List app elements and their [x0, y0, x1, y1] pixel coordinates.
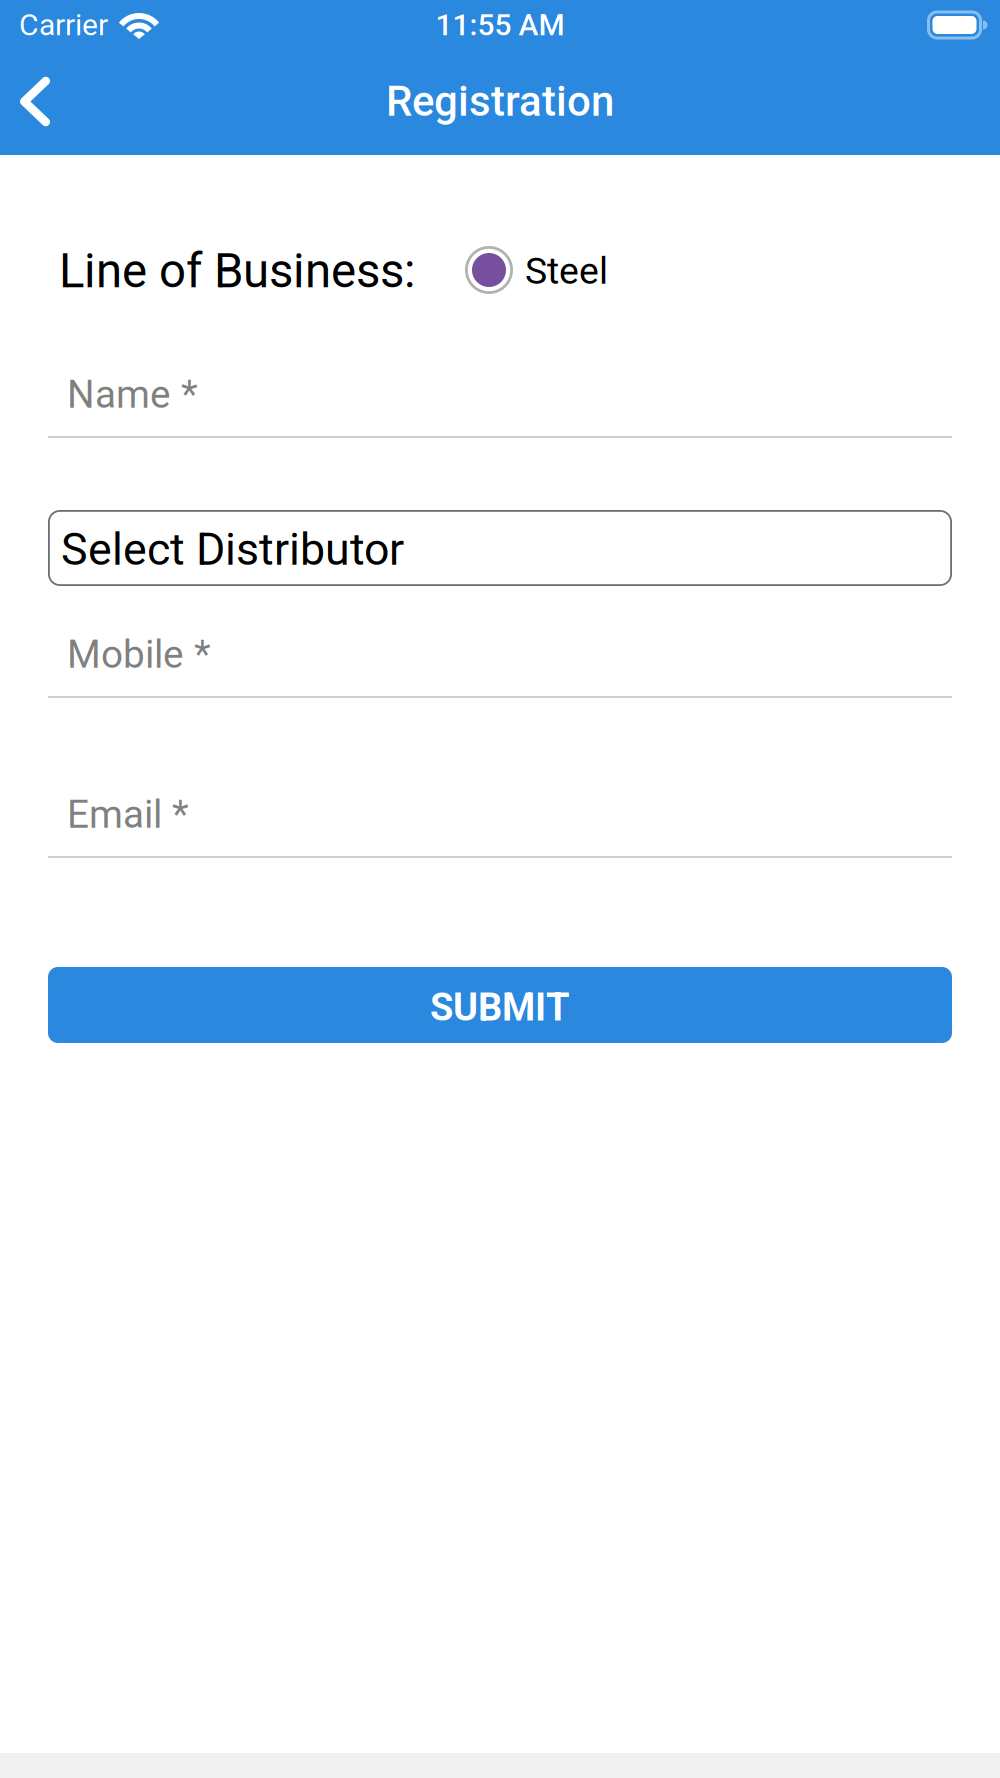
button[interactable]: Steel — [465, 246, 608, 294]
staticText: SUBMIT — [430, 985, 570, 1030]
button[interactable]: Email * — [48, 768, 952, 858]
staticText: Registration — [386, 77, 614, 126]
staticText: Email * — [67, 792, 189, 837]
staticText: Select Distributor — [61, 523, 404, 576]
staticText: 11:55 AM — [435, 7, 564, 43]
button[interactable]: Select Distributor — [48, 510, 952, 586]
button[interactable]: Back — [0, 58, 70, 144]
staticText: Line of Business: — [59, 243, 415, 299]
staticText: Steel — [525, 249, 608, 293]
button[interactable]: Name * — [48, 348, 952, 438]
staticText: Name * — [67, 372, 198, 417]
staticText: Carrier — [19, 7, 108, 43]
staticText: Mobile * — [67, 632, 211, 677]
button[interactable]: Mobile * — [48, 608, 952, 698]
button[interactable]: SUBMIT — [48, 967, 952, 1043]
